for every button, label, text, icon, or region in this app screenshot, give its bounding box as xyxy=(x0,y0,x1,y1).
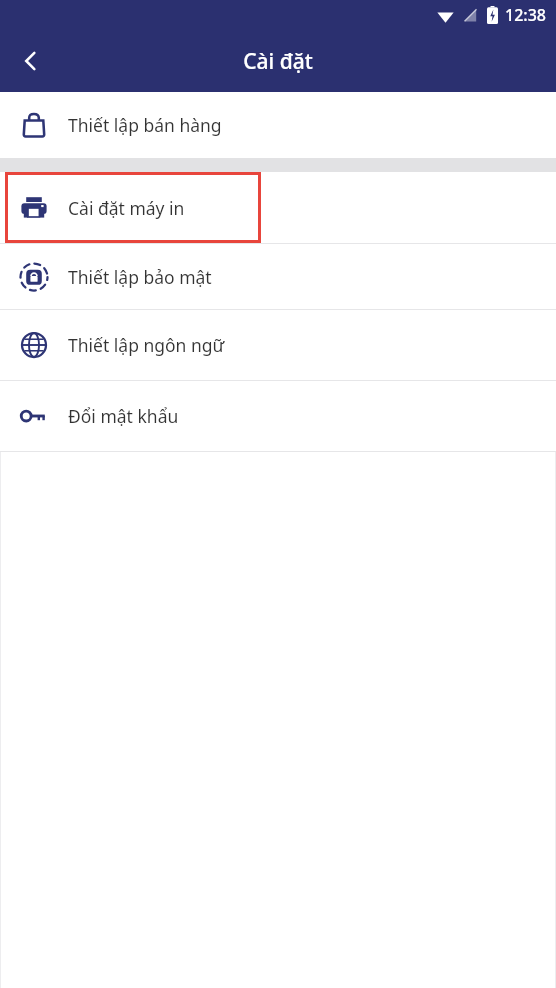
staticText: Cài đặt xyxy=(243,47,313,76)
staticText: Đổi mật khẩu xyxy=(68,404,179,428)
staticText: Cài đặt máy in xyxy=(68,196,185,220)
button[interactable]: Thiết lập ngôn ngữ xyxy=(0,310,556,380)
staticText: Thiết lập ngôn ngữ xyxy=(68,333,225,357)
button[interactable]: Cài đặt máy in xyxy=(0,172,556,243)
staticText: Thiết lập bảo mật xyxy=(68,265,212,289)
button[interactable]: Thiết lập bảo mật xyxy=(0,244,556,309)
button[interactable]: Thiết lập bán hàng xyxy=(0,92,556,158)
staticText: 12:38 xyxy=(505,4,546,26)
button[interactable]: Back xyxy=(0,30,62,92)
button[interactable]: Đổi mật khẩu xyxy=(0,381,556,451)
staticText: Thiết lập bán hàng xyxy=(68,113,222,137)
